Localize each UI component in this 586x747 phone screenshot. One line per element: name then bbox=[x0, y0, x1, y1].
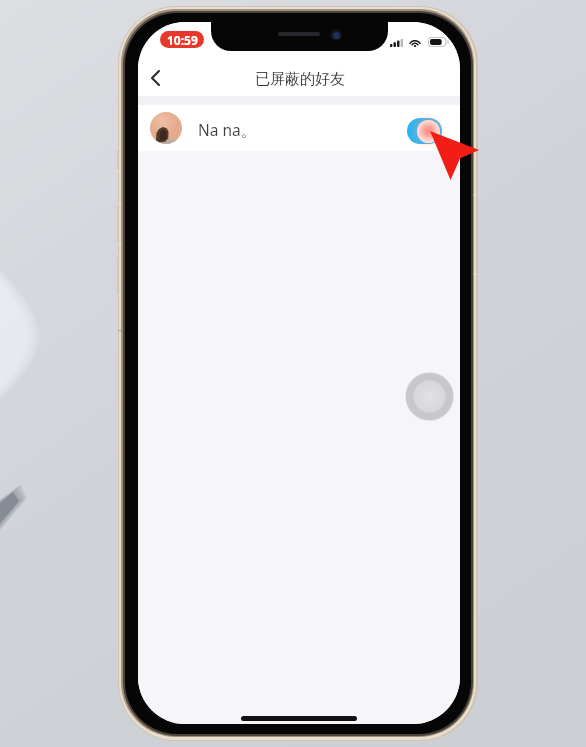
button[interactable]: Back bbox=[138, 67, 175, 89]
button[interactable]: Assistive touch bbox=[405, 372, 454, 421]
button[interactable]: Na na。 bbox=[138, 105, 460, 151]
staticText: Na na。 bbox=[198, 119, 257, 140]
staticText: 10:59 bbox=[167, 32, 198, 48]
button[interactable]: Blocked toggle bbox=[407, 118, 442, 144]
staticText: 已屏蔽的好友 bbox=[255, 70, 345, 89]
